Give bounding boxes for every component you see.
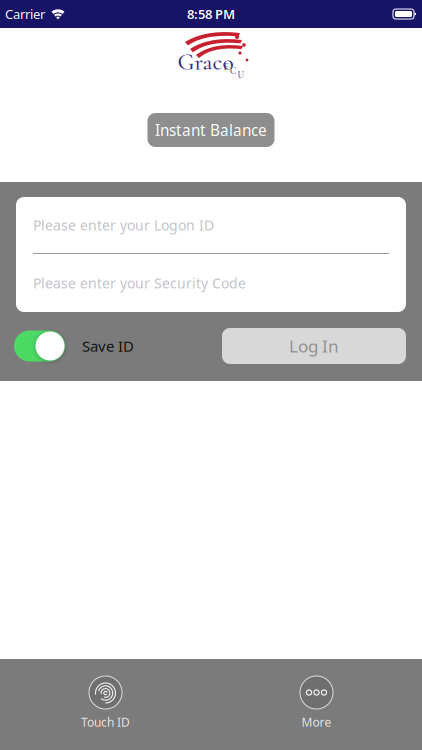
staticText: Graco (177, 48, 233, 76)
button[interactable]: Log In (222, 328, 406, 364)
staticText: 8:58 PM (187, 5, 235, 23)
staticText: Please enter your Logon ID (33, 215, 214, 235)
button[interactable]: Touch ID (81, 659, 130, 750)
staticText: Please enter your Security Code (33, 273, 246, 293)
staticText: Touch ID (81, 714, 130, 730)
staticText: Instant Balance (155, 120, 267, 140)
staticText: Carrier (5, 5, 45, 23)
staticText: C (230, 65, 236, 77)
button[interactable]: Instant Balance (147, 113, 274, 147)
button[interactable]: Save ID (14, 330, 65, 361)
staticText: Save ID (82, 336, 134, 356)
button[interactable]: Security Code (16, 254, 406, 312)
staticText: More (301, 714, 331, 730)
staticText: F (223, 61, 228, 73)
staticText: U (237, 69, 244, 81)
button[interactable]: More (300, 659, 333, 750)
button[interactable]: Logon ID (16, 197, 406, 253)
staticText: Log In (289, 334, 339, 358)
